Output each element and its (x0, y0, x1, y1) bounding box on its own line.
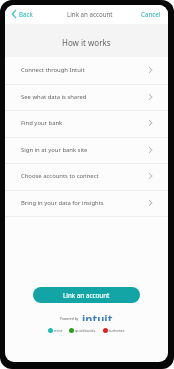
button[interactable]: Sign in at your bank site (5, 137, 168, 163)
staticText: Link an account (63, 291, 110, 300)
staticText: Back (19, 10, 33, 18)
button[interactable]: Back (5, 7, 39, 21)
staticText: intuit (82, 311, 113, 321)
staticText: Cancel (141, 10, 161, 18)
button[interactable]: Cancel (136, 7, 168, 21)
staticText: turbotax (109, 328, 125, 333)
staticText: Choose accounts to connect (21, 172, 99, 180)
staticText: quickbooks (75, 328, 96, 333)
staticText: Sign in at your bank site (21, 146, 88, 154)
staticText: Find your bank (21, 119, 63, 127)
staticText: How it works (62, 37, 111, 48)
button[interactable]: Connect through Intuit (5, 57, 168, 83)
button[interactable]: Link an account (33, 287, 140, 303)
staticText: Link an account (67, 10, 113, 18)
button[interactable]: Bring in your data for insights (5, 190, 168, 216)
other: Back (12, 10, 16, 18)
staticText: See what data is shared (21, 93, 87, 101)
button[interactable]: Find your bank (5, 110, 168, 136)
staticText: Powered by (60, 316, 79, 320)
button[interactable]: Choose accounts to connect (5, 163, 168, 189)
staticText: Bring in your data for insights (21, 199, 104, 207)
staticText: Connect through Intuit (21, 66, 85, 74)
staticText: mint (54, 328, 63, 333)
button[interactable]: See what data is shared (5, 84, 168, 110)
